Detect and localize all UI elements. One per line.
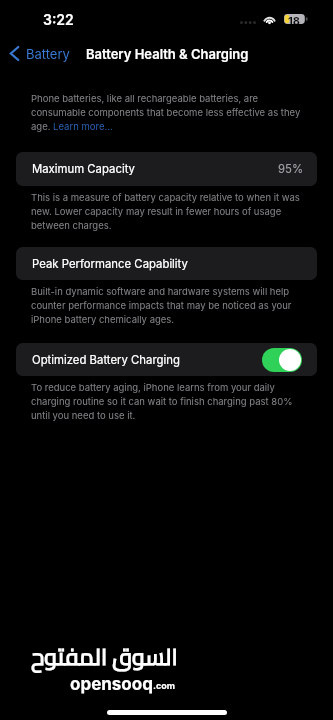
- staticText: Battery: [26, 46, 70, 62]
- staticText: Built-in dynamic software and hardware s…: [31, 286, 311, 325]
- button[interactable]: Optimized Battery Charging toggle: [262, 348, 302, 372]
- staticText: 3:22: [43, 11, 74, 28]
- button[interactable]: Maximum Capacity: [16, 152, 317, 186]
- button[interactable]: Optimized Battery Charging: [16, 343, 317, 376]
- button[interactable]: Battery: [0, 44, 76, 60]
- staticText: 18: [288, 14, 300, 24]
- staticText: Battery Health & Charging: [86, 46, 249, 62]
- staticText: To reduce battery aging, iPhone learns f…: [31, 382, 311, 421]
- button[interactable]: Peak Performance Capability: [16, 247, 317, 280]
- staticText: السوق المفتوح: [31, 635, 178, 678]
- staticText: opensooq: [70, 674, 153, 695]
- staticText: This is a measure of battery capacity re…: [31, 192, 311, 231]
- staticText: 95%: [278, 162, 304, 176]
- staticText: Phone batteries, like all rechargeable b…: [31, 93, 311, 132]
- staticText: Peak Performance Capability: [32, 257, 188, 271]
- staticText: .com: [153, 680, 176, 691]
- staticText: Maximum Capacity: [32, 162, 135, 176]
- staticText: Optimized Battery Charging: [32, 353, 180, 367]
